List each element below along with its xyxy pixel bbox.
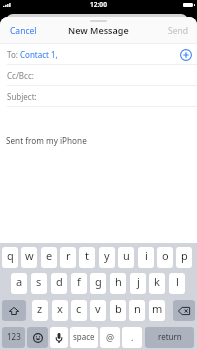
staticText: c — [76, 301, 82, 316]
button[interactable]: q — [2, 247, 18, 268]
button[interactable]: @ — [100, 327, 120, 348]
button[interactable]: o — [157, 247, 173, 268]
staticText: d — [56, 274, 63, 289]
button[interactable]: l — [169, 273, 185, 294]
staticText: y — [104, 248, 110, 263]
staticText: space — [73, 331, 95, 342]
button[interactable]: a — [11, 273, 27, 294]
button[interactable]: m — [149, 300, 165, 321]
button[interactable]: Add contact — [179, 48, 193, 62]
staticText: x — [57, 301, 63, 316]
staticText: s — [36, 274, 42, 289]
button[interactable]: x — [52, 300, 68, 321]
staticText: r — [66, 248, 71, 263]
button[interactable]: Shift — [2, 300, 26, 321]
button[interactable]: Send — [159, 23, 197, 40]
button[interactable]: Dictate — [50, 327, 68, 348]
staticText: Subject: — [7, 91, 37, 102]
staticText: h — [115, 274, 122, 289]
button[interactable]: i — [138, 247, 154, 268]
button[interactable]: return — [145, 327, 194, 348]
button[interactable]: Cc/Bcc: — [0, 65, 197, 86]
staticText: 12:00 — [90, 0, 107, 9]
staticText: Cancel — [10, 25, 37, 37]
button[interactable]: h — [110, 273, 126, 294]
staticText: o — [162, 248, 169, 263]
button[interactable]: n — [129, 300, 145, 321]
staticText: l — [176, 274, 179, 289]
staticText: z — [37, 301, 43, 316]
button[interactable]: p — [176, 247, 192, 268]
button[interactable]: r — [60, 247, 76, 268]
staticText: To: — [7, 49, 18, 60]
staticText: n — [134, 301, 141, 316]
button[interactable]: e — [41, 247, 57, 268]
button[interactable]: j — [130, 273, 146, 294]
button[interactable]: Emoji — [27, 327, 48, 348]
staticText: v — [95, 301, 101, 316]
staticText: a — [16, 274, 23, 289]
button[interactable]: f — [71, 273, 87, 294]
staticText: 123 — [7, 331, 21, 342]
button[interactable]: y — [99, 247, 115, 268]
button[interactable]: c — [71, 300, 87, 321]
button[interactable]: . — [122, 327, 142, 348]
staticText: q — [7, 248, 14, 263]
button[interactable]: b — [110, 300, 126, 321]
button[interactable]: g — [90, 273, 106, 294]
staticText: k — [154, 274, 160, 289]
staticText: b — [115, 301, 122, 316]
button[interactable]: To: — [0, 44, 197, 65]
button[interactable]: k — [149, 273, 165, 294]
staticText: @ — [106, 331, 115, 343]
button[interactable]: s — [31, 273, 47, 294]
staticText: Send — [168, 25, 188, 37]
button[interactable]: d — [51, 273, 67, 294]
staticText: m — [152, 301, 163, 316]
staticText: p — [181, 248, 188, 263]
staticText: i — [145, 248, 148, 263]
staticText: . — [131, 331, 134, 343]
button[interactable]: z — [32, 300, 48, 321]
staticText: New Message — [68, 24, 129, 36]
staticText: Sent from my iPhone — [6, 135, 87, 146]
button[interactable]: 123 — [2, 327, 25, 348]
staticText: w — [25, 248, 34, 263]
staticText: u — [123, 248, 130, 263]
staticText: j — [137, 274, 140, 289]
staticText: e — [46, 248, 53, 263]
button[interactable]: space — [70, 327, 98, 348]
button[interactable]: Backspace — [173, 300, 195, 321]
staticText: Contact 1, — [20, 49, 58, 60]
staticText: f — [77, 274, 81, 289]
staticText: t — [85, 248, 89, 263]
button[interactable]: v — [90, 300, 106, 321]
staticText: return — [158, 331, 182, 342]
button[interactable]: Subject: — [0, 86, 197, 107]
button[interactable]: t — [79, 247, 95, 268]
staticText: Cc/Bcc: — [7, 70, 34, 81]
staticText: g — [95, 274, 102, 289]
button[interactable]: u — [118, 247, 134, 268]
button[interactable]: w — [21, 247, 37, 268]
button[interactable]: Cancel — [0, 23, 47, 40]
